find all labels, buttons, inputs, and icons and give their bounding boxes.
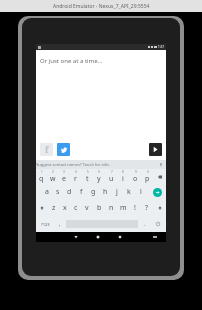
staticText: c [74, 203, 78, 213]
staticText: Suggest contact names? Touch for info. [36, 162, 110, 167]
button[interactable]: l [135, 184, 147, 200]
button[interactable]: Hide keyboard [144, 232, 166, 242]
button[interactable]: x [59, 200, 70, 216]
button[interactable]: . [139, 216, 150, 232]
button[interactable]: , [54, 216, 65, 232]
button[interactable]: ? [141, 200, 153, 216]
staticText: ?123 [41, 222, 50, 227]
button[interactable]: Home [87, 232, 109, 242]
staticText: n [109, 203, 114, 213]
staticText: p [145, 174, 150, 184]
button[interactable]: Share on Twitter [57, 143, 70, 156]
staticText: 3 [63, 170, 65, 174]
staticText: 8 [122, 170, 124, 174]
button[interactable]: Recent apps [109, 232, 131, 242]
staticText: Or just one at a time... [40, 57, 103, 65]
button[interactable]: Shift [153, 200, 166, 216]
staticText: 9 [135, 170, 137, 174]
staticText: f [80, 187, 83, 197]
button[interactable]: 0 [141, 169, 153, 184]
staticText: z [52, 203, 56, 213]
staticText: v [85, 203, 89, 213]
staticText: s [56, 187, 60, 197]
button[interactable]: g [87, 184, 99, 200]
staticText: b [97, 203, 102, 213]
button[interactable]: v [81, 200, 93, 216]
button[interactable]: ?123 [36, 216, 54, 232]
button[interactable]: c [70, 200, 81, 216]
button[interactable]: 4 [69, 169, 81, 184]
staticText: i [122, 174, 124, 184]
button[interactable]: 9 [129, 169, 141, 184]
button[interactable]: Suggest contact names? Touch for info. [36, 160, 166, 169]
staticText: 1:37 [158, 45, 164, 49]
staticText: q [39, 174, 44, 184]
button[interactable]: Shift [36, 200, 48, 216]
staticText: j [116, 187, 118, 197]
staticText: r [74, 174, 77, 184]
staticText: 7 [111, 170, 113, 174]
button[interactable]: k [123, 184, 135, 200]
staticText: l [140, 187, 142, 197]
button[interactable]: d [63, 184, 75, 200]
staticText: e [62, 174, 66, 184]
button[interactable]: n [105, 200, 117, 216]
button[interactable]: f [75, 184, 87, 200]
button[interactable]: 7 [105, 169, 117, 184]
staticText: x [63, 203, 67, 213]
staticText: ? [145, 203, 149, 213]
button[interactable]: Share on Facebook [40, 143, 53, 156]
button[interactable]: m [117, 200, 129, 216]
button[interactable]: Enter [149, 184, 166, 200]
staticText: 6 [98, 170, 100, 174]
button[interactable]: 8 [117, 169, 129, 184]
staticText: t [86, 174, 89, 184]
staticText: h [103, 187, 108, 197]
button[interactable]: Back [64, 232, 87, 242]
staticText: w [50, 174, 56, 184]
button[interactable]: ! [129, 200, 141, 216]
button[interactable]: 6 [93, 169, 105, 184]
staticText: , [59, 220, 61, 228]
button[interactable]: j [111, 184, 123, 200]
staticText: 0 [147, 170, 149, 174]
button[interactable]: Send [149, 143, 162, 156]
button[interactable]: Emoji [150, 216, 166, 232]
staticText: m [120, 203, 127, 213]
button[interactable]: z [48, 200, 59, 216]
button[interactable]: h [99, 184, 111, 200]
button[interactable]: Keyboard settings [159, 163, 163, 167]
staticText: 4 [75, 170, 77, 174]
staticText: a [45, 187, 49, 197]
staticText: o [133, 174, 138, 184]
staticText: 5 [87, 170, 89, 174]
staticText: ! [134, 203, 136, 213]
button[interactable]: 3 [58, 169, 69, 184]
staticText: g [91, 187, 96, 197]
button[interactable]: 2 [47, 169, 58, 184]
staticText: k [127, 187, 131, 197]
staticText: f [45, 144, 49, 155]
staticText: 2 [52, 170, 54, 174]
staticText: d [67, 187, 72, 197]
staticText: Android Emulator - Nexus_7_API_29:5554 [53, 3, 150, 10]
staticText: y [97, 174, 101, 184]
staticText: . [144, 220, 146, 228]
staticText: 1 [41, 170, 43, 174]
staticText: u [109, 174, 114, 184]
button[interactable]: Backspace [153, 169, 166, 184]
button[interactable]: a [41, 184, 52, 200]
button[interactable]: s [52, 184, 63, 200]
button[interactable]: 5 [81, 169, 93, 184]
button[interactable]: b [93, 200, 105, 216]
button[interactable]: 1 [36, 169, 47, 184]
